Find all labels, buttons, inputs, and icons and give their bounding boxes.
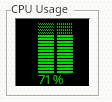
button[interactable]: 71 %: [38, 70, 63, 88]
staticText: CPU Usage: [11, 1, 68, 16]
